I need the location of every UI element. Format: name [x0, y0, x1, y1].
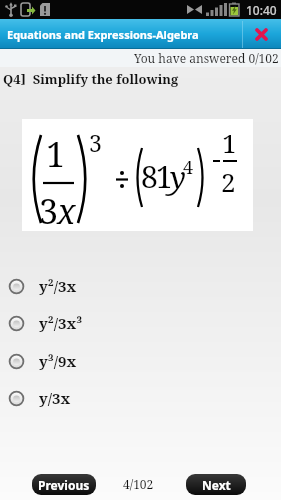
- staticText: 3: [39, 188, 59, 234]
- button[interactable]: y²/3x: [9, 273, 179, 299]
- staticText: Equations and Expressions-Algebra: [7, 27, 199, 42]
- button[interactable]: y²/3x³: [9, 310, 179, 336]
- staticText: Next: [202, 477, 231, 493]
- staticText: y²/3x³: [39, 313, 83, 333]
- button[interactable]: y³/9x: [9, 348, 179, 374]
- staticText: y/3x: [39, 388, 71, 408]
- staticText: Q4] Simplify the following: [3, 70, 179, 88]
- staticText: y: [170, 157, 186, 198]
- button[interactable]: y/3x: [9, 385, 179, 411]
- staticText: y³/9x: [39, 351, 77, 371]
- staticText: 10:40: [246, 2, 277, 18]
- button[interactable]: Previous: [32, 474, 96, 495]
- staticText: y²/3x: [39, 276, 77, 296]
- staticText: 1: [222, 125, 237, 160]
- staticText: 4/102: [123, 476, 154, 492]
- button[interactable]: Next: [186, 474, 246, 495]
- staticText: 4: [183, 155, 194, 180]
- staticText: Previous: [38, 477, 90, 493]
- staticText: 2: [221, 164, 236, 199]
- staticText: You have answered 0/102: [134, 50, 279, 66]
- staticText: 81: [141, 156, 171, 197]
- staticText: x: [57, 188, 76, 234]
- staticText: 3: [89, 127, 102, 158]
- staticText: 1: [46, 131, 66, 177]
- button[interactable]: [243, 19, 281, 49]
